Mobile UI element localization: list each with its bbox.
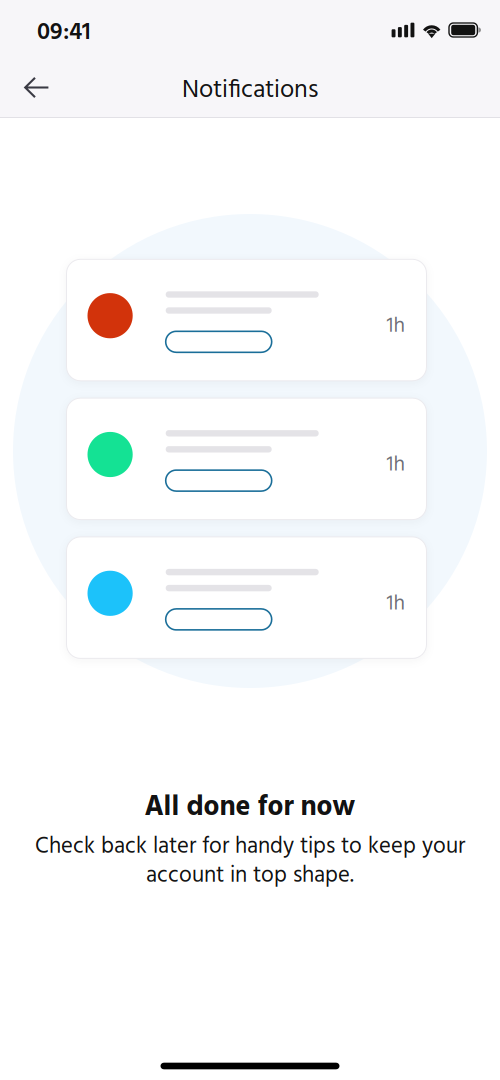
button[interactable]: 1h [66,259,426,381]
button[interactable]: Back [12,64,62,113]
staticText: All done for now [144,785,355,830]
staticText: 1h [386,448,405,482]
staticText: Notifications [182,70,318,111]
staticText: 1h [386,587,405,621]
staticText: Check back later for handy tips to keep … [35,829,465,865]
staticText: account in top shape. [146,858,354,894]
staticText: 09:41 [37,14,91,52]
button[interactable]: 1h [66,537,426,658]
button[interactable]: 1h [66,398,426,520]
staticText: 1h [386,309,405,343]
